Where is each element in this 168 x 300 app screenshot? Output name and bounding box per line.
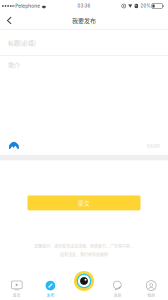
staticText: 首页 bbox=[13, 292, 21, 298]
staticText: 标题(必填) bbox=[8, 38, 36, 47]
staticText: 简介 bbox=[8, 60, 20, 69]
staticText: 如有违反，我们将有权删除 bbox=[60, 252, 108, 258]
button[interactable]: 发布 bbox=[34, 270, 67, 300]
staticText: 我的 bbox=[147, 292, 155, 298]
button[interactable]: Camera bbox=[67, 270, 101, 300]
staticText: 0/500 bbox=[147, 144, 160, 149]
staticText: Pelephone bbox=[14, 3, 41, 9]
staticText: 03:36 bbox=[77, 3, 90, 9]
staticText: 温馨提示：请勿发布违法违规、色情暴力、广告等内容， bbox=[34, 243, 134, 249]
staticText: 发布 bbox=[46, 292, 54, 298]
button[interactable]: Back bbox=[0, 12, 17, 29]
staticText: 20% bbox=[140, 3, 150, 9]
button[interactable]: 提交 bbox=[27, 195, 140, 210]
button[interactable]: 标题(必填) bbox=[0, 30, 168, 56]
staticText: 我要发布 bbox=[72, 16, 96, 25]
button[interactable]: 消息 bbox=[101, 270, 134, 300]
staticText: 提交 bbox=[78, 199, 90, 207]
staticText: 消息 bbox=[114, 292, 122, 298]
button[interactable]: 首页 bbox=[0, 270, 34, 300]
button[interactable]: 简介 bbox=[0, 56, 168, 155]
button[interactable]: 我的 bbox=[134, 270, 168, 300]
